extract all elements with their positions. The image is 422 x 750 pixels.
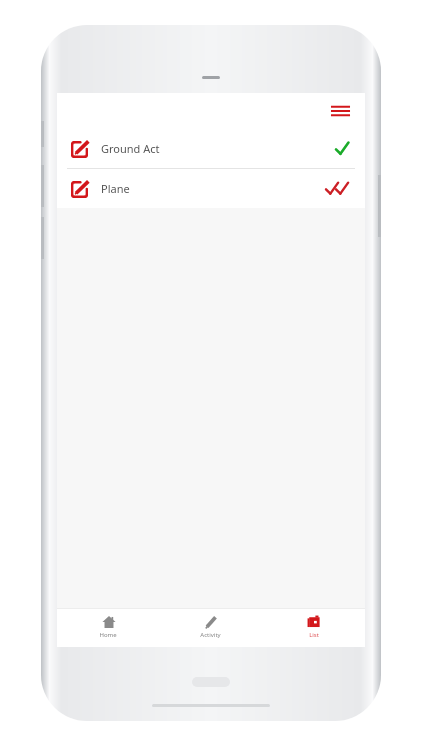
button[interactable]: Activity bbox=[159, 609, 262, 647]
staticText: Ground Act bbox=[101, 141, 160, 156]
button[interactable]: Ground Act bbox=[57, 129, 365, 168]
button[interactable]: Home bbox=[57, 609, 159, 647]
staticText: Home bbox=[99, 631, 117, 639]
button[interactable]: Menu bbox=[327, 98, 353, 124]
button[interactable]: Plane bbox=[57, 169, 365, 208]
staticText: Plane bbox=[101, 181, 130, 196]
button[interactable]: List bbox=[262, 609, 365, 647]
staticText: List bbox=[309, 631, 319, 639]
staticText: Activity bbox=[200, 631, 221, 639]
